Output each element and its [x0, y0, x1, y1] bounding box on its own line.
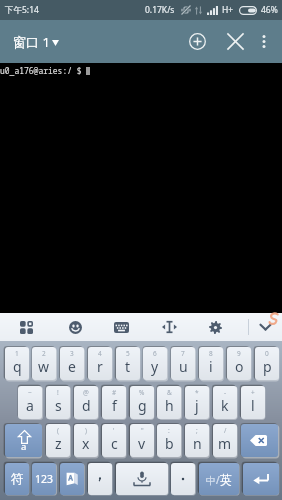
- staticText: &: [167, 388, 172, 397]
- staticText: H+: [222, 4, 234, 16]
- button[interactable]: (: [46, 424, 70, 457]
- staticText: 4: [98, 349, 102, 358]
- staticText: 下午5:14: [5, 4, 39, 16]
- button[interactable]: 3: [60, 347, 84, 380]
- staticText: m: [218, 434, 232, 453]
- staticText: z: [55, 434, 62, 453]
- button[interactable]: ': [102, 424, 126, 457]
- button[interactable]: Shift: [5, 424, 42, 457]
- button[interactable]: ): [74, 424, 98, 457]
- button[interactable]: Move cursor: [156, 313, 182, 341]
- staticText: 9: [237, 349, 241, 358]
- button[interactable]: +: [241, 386, 265, 419]
- button[interactable]: 8: [199, 347, 223, 380]
- button[interactable]: 2: [32, 347, 56, 380]
- staticText: 8: [209, 349, 213, 358]
- staticText: 0: [265, 349, 269, 358]
- button[interactable]: Period: [171, 463, 195, 495]
- button[interactable]: Enter: [243, 463, 279, 495]
- button[interactable]: New window: [181, 25, 214, 58]
- staticText: -: [224, 388, 227, 397]
- button[interactable]: 1: [5, 347, 29, 380]
- staticText: g: [138, 396, 147, 415]
- staticText: 窗口 1: [13, 33, 50, 51]
- staticText: 中/: [206, 473, 220, 487]
- staticText: *: [195, 388, 199, 397]
- staticText: %: [139, 388, 145, 397]
- button[interactable]: Emoji: [62, 313, 88, 341]
- staticText: n: [193, 434, 202, 453]
- staticText: 0.17K/s: [145, 4, 175, 16]
- staticText: :: [168, 426, 170, 435]
- staticText: q: [13, 357, 22, 376]
- staticText: e: [68, 357, 76, 376]
- staticText: 2: [42, 349, 46, 358]
- staticText: w: [38, 357, 50, 376]
- button[interactable]: Space: [116, 463, 168, 495]
- button[interactable]: Settings: [202, 313, 228, 341]
- staticText: 5: [126, 349, 130, 358]
- staticText: a: [21, 440, 27, 453]
- button[interactable]: @: [74, 386, 98, 419]
- button[interactable]: Symbols: [5, 463, 29, 495]
- button[interactable]: 9: [227, 347, 251, 380]
- staticText: d: [82, 396, 91, 415]
- button[interactable]: 4: [88, 347, 112, 380]
- button[interactable]: 窗口 1: [9, 27, 63, 57]
- staticText: (: [57, 426, 59, 435]
- button[interactable]: Backspace: [241, 424, 278, 457]
- staticText: 英: [220, 472, 232, 487]
- button[interactable]: 0: [255, 347, 279, 380]
- staticText: 6: [153, 349, 157, 358]
- staticText: l: [251, 396, 255, 415]
- button[interactable]: %: [130, 386, 154, 419]
- button[interactable]: Close window: [219, 25, 252, 58]
- staticText: r: [97, 357, 103, 376]
- staticText: 123: [35, 472, 54, 486]
- button[interactable]: 5: [116, 347, 140, 380]
- staticText: p: [263, 357, 272, 376]
- staticText: /: [224, 426, 227, 435]
- button[interactable]: More options: [252, 25, 276, 58]
- button[interactable]: 7: [171, 347, 195, 380]
- staticText: a: [26, 396, 34, 415]
- staticText: ): [85, 426, 87, 435]
- staticText: ;: [196, 426, 198, 435]
- button[interactable]: Numbers: [32, 463, 56, 495]
- staticText: x: [82, 434, 90, 453]
- staticText: !: [57, 388, 59, 397]
- button[interactable]: &: [157, 386, 181, 419]
- staticText: ': [113, 426, 115, 435]
- staticText: i: [209, 357, 213, 376]
- button[interactable]: *: [185, 386, 209, 419]
- staticText: #: [112, 388, 117, 397]
- staticText: 7: [181, 349, 185, 358]
- button[interactable]: #: [102, 386, 126, 419]
- staticText: ~: [28, 388, 32, 397]
- button[interactable]: Hide keyboard: [252, 313, 278, 341]
- button[interactable]: ": [130, 424, 154, 457]
- button[interactable]: /: [213, 424, 237, 457]
- button[interactable]: ;: [185, 424, 209, 457]
- button[interactable]: :: [157, 424, 181, 457]
- staticText: +: [251, 388, 255, 397]
- button[interactable]: !: [46, 386, 70, 419]
- staticText: o: [235, 357, 244, 376]
- button[interactable]: Panel: [13, 313, 39, 341]
- staticText: j: [195, 396, 199, 415]
- button[interactable]: Input language: [60, 463, 84, 495]
- button[interactable]: Comma: [88, 463, 112, 495]
- staticText: h: [165, 396, 174, 415]
- button[interactable]: Keyboard layout: [108, 313, 134, 341]
- staticText: s: [55, 396, 62, 415]
- button[interactable]: 6: [143, 347, 167, 380]
- button[interactable]: ~: [18, 386, 42, 419]
- button[interactable]: -: [213, 386, 237, 419]
- button[interactable]: Switch language: [199, 463, 239, 495]
- staticText: @: [83, 388, 89, 397]
- staticText: 符: [11, 471, 24, 487]
- staticText: y: [151, 357, 159, 376]
- staticText: c: [111, 434, 118, 453]
- staticText: u: [179, 357, 188, 376]
- staticText: 46%: [261, 4, 278, 16]
